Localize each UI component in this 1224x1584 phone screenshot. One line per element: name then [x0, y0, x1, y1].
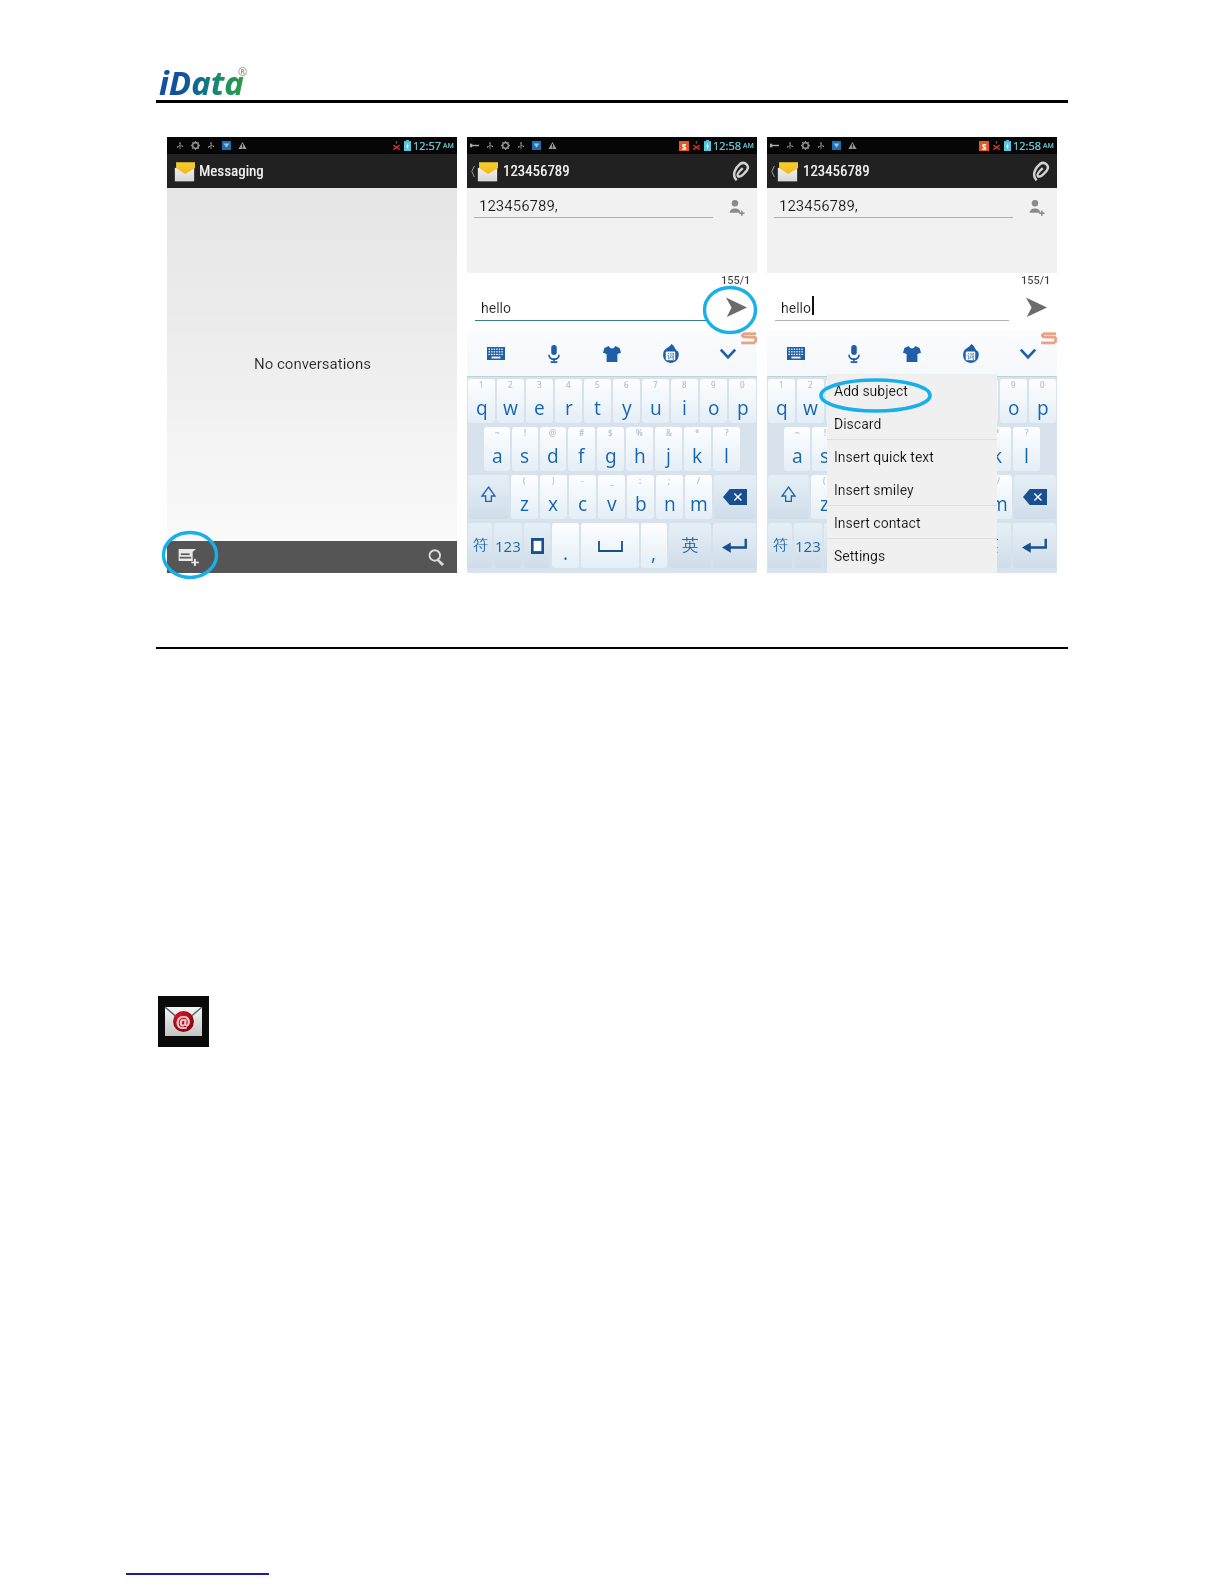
button[interactable]: .: [852, 523, 879, 568]
button[interactable]: _: [898, 475, 925, 519]
button[interactable]: Insert smiley: [827, 473, 997, 506]
button[interactable]: 5: [884, 379, 911, 423]
button[interactable]: !: [812, 427, 838, 471]
button[interactable]: Backspace: [714, 475, 756, 519]
button[interactable]: shirt: [583, 331, 641, 376]
button[interactable]: 英: [669, 523, 711, 568]
button[interactable]: @: [840, 427, 866, 471]
button[interactable]: Send: [1018, 294, 1054, 320]
button[interactable]: Back: [468, 154, 477, 188]
button[interactable]: ;: [656, 475, 683, 519]
button[interactable]: ): [540, 475, 567, 519]
button[interactable]: Enter: [713, 523, 756, 568]
button[interactable]: /: [685, 475, 712, 519]
button[interactable]: 3: [826, 379, 853, 423]
button[interactable]: ?: [713, 427, 740, 471]
button[interactable]: down: [699, 331, 757, 376]
button[interactable]: ?: [1013, 427, 1040, 471]
button[interactable]: #: [868, 427, 895, 471]
button[interactable]: %: [926, 427, 953, 471]
button[interactable]: (: [811, 475, 838, 519]
button[interactable]: 符: [768, 523, 792, 568]
button[interactable]: Discard: [827, 407, 997, 440]
button[interactable]: 123: [494, 523, 522, 568]
button[interactable]: Shift: [768, 475, 809, 519]
button[interactable]: ): [840, 475, 867, 519]
button[interactable]: *: [984, 427, 1011, 471]
button[interactable]: Insert contact: [827, 506, 997, 539]
button[interactable]: $: [897, 427, 924, 471]
button[interactable]: shirt: [883, 331, 941, 376]
button[interactable]: ,: [641, 523, 667, 568]
button[interactable]: &: [655, 427, 682, 471]
button[interactable]: 7: [642, 379, 669, 423]
button[interactable]: *: [684, 427, 711, 471]
button[interactable]: Backspace: [1014, 475, 1056, 519]
staticText: s: [820, 443, 830, 469]
button[interactable]: kb: [767, 331, 825, 376]
button[interactable]: 4: [855, 379, 882, 423]
button[interactable]: Attach: [1023, 154, 1057, 188]
button[interactable]: 123: [794, 523, 822, 568]
button[interactable]: Shift: [468, 475, 509, 519]
button[interactable]: mic: [825, 331, 883, 376]
button[interactable]: kb: [467, 331, 525, 376]
button[interactable]: ~: [784, 427, 810, 471]
button[interactable]: @: [540, 427, 566, 471]
button[interactable]: :: [627, 475, 654, 519]
button[interactable]: !: [512, 427, 538, 471]
button[interactable]: Settings: [827, 539, 997, 572]
button[interactable]: 符: [468, 523, 492, 568]
button[interactable]: 4: [555, 379, 582, 423]
button[interactable]: Add subject: [827, 374, 997, 407]
button[interactable]: mic: [525, 331, 583, 376]
button[interactable]: New message: [167, 541, 210, 573]
button[interactable]: /: [985, 475, 1012, 519]
button[interactable]: Space: [881, 523, 939, 568]
button[interactable]: Search: [415, 541, 457, 573]
button[interactable]: ci: [641, 331, 699, 376]
button[interactable]: down: [999, 331, 1057, 376]
button[interactable]: 0: [729, 379, 756, 423]
button[interactable]: Attach: [723, 154, 757, 188]
button[interactable]: Insert quick text: [827, 440, 997, 473]
button[interactable]: 6: [613, 379, 640, 423]
button[interactable]: 6: [913, 379, 940, 423]
button[interactable]: Back: [768, 154, 777, 188]
button[interactable]: ci: [941, 331, 999, 376]
button[interactable]: 0: [1029, 379, 1056, 423]
button[interactable]: 8: [671, 379, 698, 423]
button[interactable]: 5: [584, 379, 611, 423]
button[interactable]: Send: [718, 294, 754, 320]
button[interactable]: Enter: [1013, 523, 1056, 568]
button[interactable]: _: [598, 475, 625, 519]
button[interactable]: Space: [581, 523, 639, 568]
button[interactable]: 9: [700, 379, 727, 423]
button[interactable]: $: [597, 427, 624, 471]
button[interactable]: (: [511, 475, 538, 519]
button[interactable]: .: [552, 523, 579, 568]
button[interactable]: -: [569, 475, 596, 519]
button[interactable]: Add contact: [1024, 195, 1048, 219]
button[interactable]: 2: [497, 379, 524, 423]
button[interactable]: 1: [468, 379, 495, 423]
button[interactable]: 英: [969, 523, 1011, 568]
button[interactable]: #: [568, 427, 595, 471]
button[interactable]: 3: [526, 379, 553, 423]
button[interactable]: %: [626, 427, 653, 471]
button[interactable]: Add contact: [724, 195, 748, 219]
button[interactable]: 9: [1000, 379, 1027, 423]
button[interactable]: 2: [797, 379, 824, 423]
button[interactable]: Language: [524, 523, 550, 568]
button[interactable]: 1: [768, 379, 795, 423]
button[interactable]: Language: [824, 523, 850, 568]
button[interactable]: -: [869, 475, 896, 519]
button[interactable]: ~: [484, 427, 510, 471]
button[interactable]: Messaging: [167, 154, 457, 188]
